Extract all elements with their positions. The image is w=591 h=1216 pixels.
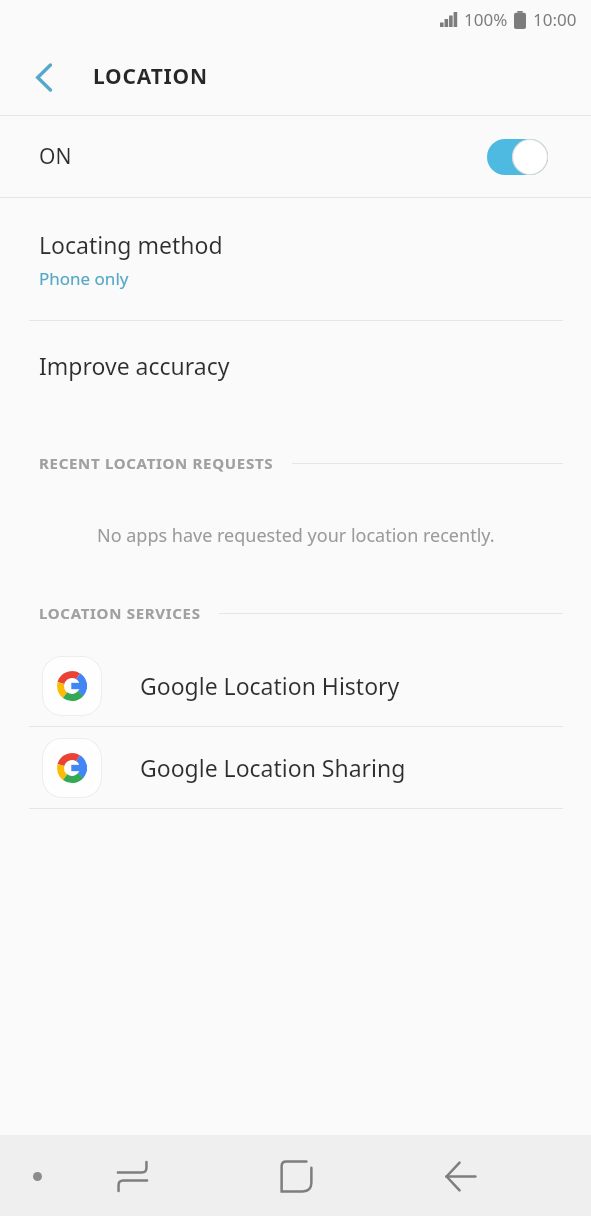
button[interactable]: Google Location Sharing <box>0 727 591 808</box>
staticText: LOCATION SERVICES <box>39 603 201 623</box>
staticText: Improve accuracy <box>39 350 230 381</box>
button[interactable]: ON <box>0 116 591 197</box>
button[interactable]: Show hidden buttons <box>17 1156 57 1196</box>
button[interactable]: Locating method <box>0 198 591 320</box>
button[interactable]: Improve accuracy <box>0 321 591 409</box>
staticText: ON <box>39 142 72 171</box>
button[interactable]: Back <box>20 53 68 101</box>
staticText: 10:00 <box>533 8 577 31</box>
button[interactable]: Recent apps <box>107 1151 157 1201</box>
staticText: LOCATION <box>93 62 208 91</box>
button[interactable]: Back <box>435 1151 485 1201</box>
staticText: RECENT LOCATION REQUESTS <box>39 453 274 473</box>
staticText: No apps have requested your location rec… <box>97 523 495 548</box>
staticText: Locating method <box>39 229 223 260</box>
staticText: 100% <box>464 8 508 31</box>
button[interactable]: Home <box>269 1149 323 1203</box>
staticText: Phone only <box>39 267 129 290</box>
button[interactable]: Google Location History <box>0 645 591 726</box>
staticText: Google Location Sharing <box>140 752 406 783</box>
staticText: Google Location History <box>140 670 400 701</box>
